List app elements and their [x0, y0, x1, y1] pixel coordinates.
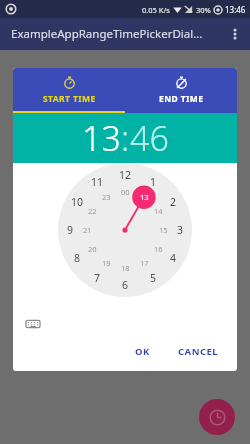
staticText: 13	[140, 192, 149, 202]
button[interactable]: Switch to keyboard input	[22, 313, 44, 335]
staticText: 30%	[196, 5, 211, 15]
staticText: 11	[91, 175, 104, 189]
staticText: ExampleAppRangeTimePickerDial...	[11, 26, 203, 42]
staticText: 4	[170, 251, 177, 265]
staticText: 17	[140, 258, 149, 268]
staticText: 21	[83, 225, 92, 235]
staticText: 7	[94, 271, 101, 285]
button[interactable]: 46	[130, 115, 169, 161]
staticText: 46	[130, 115, 169, 161]
staticText: START TIME	[43, 93, 96, 105]
button[interactable]: 13	[82, 115, 121, 161]
staticText: 13:46	[225, 4, 246, 15]
staticText: 6	[122, 278, 129, 292]
staticText: 2	[170, 195, 177, 209]
staticText: 0.05 K/s	[142, 5, 170, 15]
staticText: 10	[71, 195, 84, 209]
staticText: OK	[135, 345, 150, 358]
staticText: :	[121, 115, 130, 161]
staticText: 20	[88, 244, 97, 254]
staticText: 16	[154, 244, 163, 254]
staticText: 00	[121, 187, 130, 197]
staticText: CANCEL	[178, 345, 219, 358]
staticText: 5	[150, 271, 157, 285]
staticText: 15	[159, 225, 168, 235]
staticText: 8	[74, 251, 81, 265]
staticText: 9	[67, 223, 74, 237]
staticText: 18	[121, 263, 130, 273]
staticText: 22	[88, 206, 97, 216]
staticText: 23	[102, 192, 111, 202]
button[interactable]: Pick time	[199, 399, 235, 435]
staticText: 3	[177, 223, 184, 237]
staticText: 19	[102, 258, 111, 268]
button[interactable]: OK	[127, 340, 158, 363]
button[interactable]: START TIME	[13, 68, 125, 113]
staticText: 1	[150, 175, 157, 189]
staticText: END TIME	[159, 93, 204, 105]
staticText: 13	[82, 115, 121, 161]
staticText: 12	[119, 168, 132, 182]
button[interactable]: END TIME	[125, 68, 237, 113]
button[interactable]: CANCEL	[170, 340, 227, 363]
button[interactable]: More options	[220, 19, 250, 49]
staticText: 14	[154, 206, 163, 216]
